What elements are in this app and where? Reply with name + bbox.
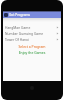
staticText: Tower Of Hanoi	[5, 37, 29, 41]
staticText: Select a Program	[3, 44, 61, 49]
other: App icon	[4, 13, 8, 17]
button[interactable]: HangMan Game	[3, 24, 61, 30]
button[interactable]: Number Guessing Game	[3, 30, 61, 36]
staticText: Got Programs	[9, 13, 31, 17]
button[interactable]: App icon	[3, 12, 61, 18]
staticText: Enjoy the Games	[3, 50, 61, 55]
button[interactable]: Home	[30, 86, 34, 90]
staticText: HangMan Game	[5, 25, 31, 29]
button[interactable]: Tower Of Hanoi	[3, 36, 61, 42]
staticText: Number Guessing Game	[5, 31, 44, 35]
